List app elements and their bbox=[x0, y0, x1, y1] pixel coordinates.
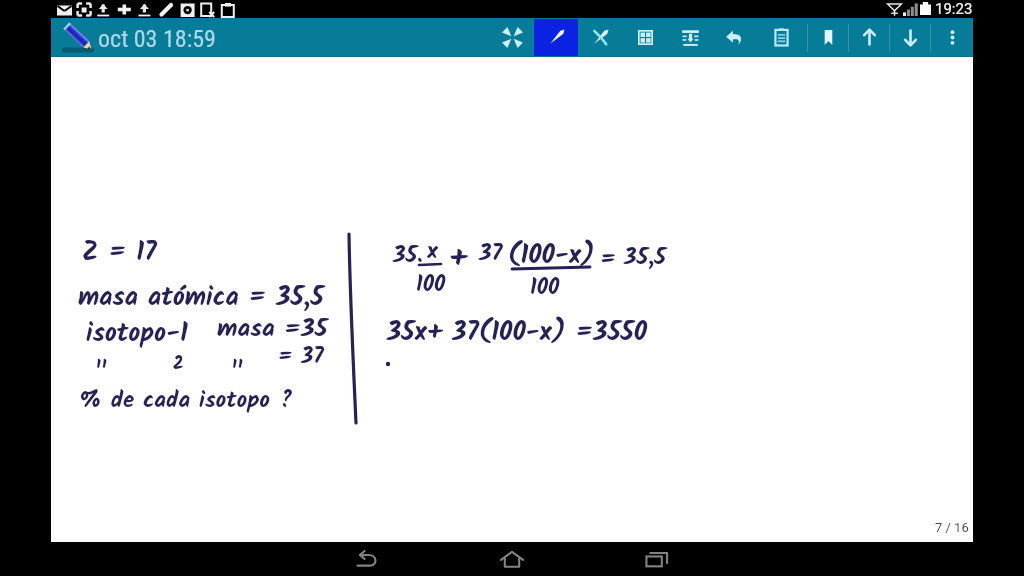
staticText: '' bbox=[230, 354, 242, 395]
staticText: 35,5 bbox=[624, 240, 666, 277]
staticText: 100 bbox=[416, 268, 446, 303]
staticText: 7 / 16 bbox=[935, 520, 969, 535]
staticText: 2 bbox=[173, 350, 184, 379]
button[interactable]: Home bbox=[489, 542, 535, 576]
button[interactable]: More options bbox=[931, 18, 973, 57]
staticText: (100-x) bbox=[508, 235, 595, 276]
staticText: 19:23 bbox=[935, 0, 973, 18]
staticText: + bbox=[449, 235, 467, 283]
button[interactable]: oct 03 18:59 bbox=[62, 18, 216, 57]
button[interactable]: Fit to screen bbox=[490, 18, 534, 57]
button[interactable]: Z = 17 bbox=[51, 57, 973, 542]
staticText: 100 bbox=[530, 271, 560, 306]
button[interactable]: Bookmark bbox=[808, 18, 848, 57]
button[interactable]: Next page bbox=[890, 18, 930, 57]
staticText: 35. bbox=[393, 238, 423, 275]
button[interactable]: Previous page bbox=[849, 18, 889, 57]
staticText: = 37 bbox=[278, 340, 324, 375]
staticText: % de cada isotopo ? bbox=[79, 383, 293, 420]
staticText: '' bbox=[94, 354, 106, 395]
staticText: isotopo-1 bbox=[86, 313, 188, 354]
staticText: masa atómica = 35,5 bbox=[78, 277, 324, 318]
button[interactable]: Notes bbox=[756, 18, 807, 57]
button[interactable]: Back bbox=[344, 542, 390, 576]
button[interactable]: Undo bbox=[713, 18, 756, 57]
staticText: = bbox=[600, 240, 617, 278]
staticText: 37 bbox=[479, 236, 503, 273]
button[interactable]: Eraser bbox=[578, 18, 623, 57]
button[interactable]: Recents bbox=[634, 542, 680, 576]
staticText: 35x+ 37(100-x) =3550 bbox=[387, 312, 648, 353]
staticText: oct 03 18:59 bbox=[98, 25, 216, 53]
staticText: x bbox=[427, 234, 438, 271]
staticText: Z = 17 bbox=[82, 232, 157, 273]
button[interactable]: Pen bbox=[534, 19, 578, 56]
button[interactable]: Grid bbox=[623, 18, 668, 57]
staticText: masa =35 bbox=[217, 309, 328, 349]
button[interactable]: Insert space bbox=[668, 18, 713, 57]
